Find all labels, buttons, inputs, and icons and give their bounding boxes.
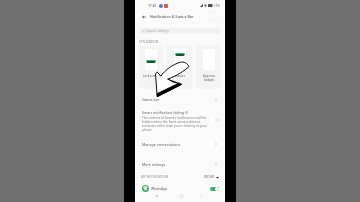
staticText: App icon badges bbox=[203, 74, 215, 82]
staticText: APP NOTIFICATIONS bbox=[141, 175, 169, 179]
button[interactable]: Smart notification hiding bbox=[135, 108, 225, 138]
button[interactable]: Manage conversations bbox=[135, 138, 225, 150]
staticText: Notification & Status Bar bbox=[150, 14, 194, 19]
staticText: 19% bbox=[214, 4, 220, 8]
button[interactable]: Banner bbox=[167, 45, 192, 89]
staticText: Lock screen bbox=[143, 74, 159, 78]
button[interactable]: Recent apps bbox=[153, 192, 161, 200]
button[interactable]: WhatsApp bbox=[135, 184, 225, 193]
staticText: RECENT bbox=[204, 175, 215, 179]
button[interactable]: RECENT bbox=[204, 175, 219, 179]
button[interactable]: App icon badges bbox=[196, 45, 221, 89]
button[interactable]: Search settings bbox=[139, 28, 221, 34]
staticText: More settings bbox=[142, 162, 166, 167]
staticText: The content of banner notifications will… bbox=[142, 116, 208, 132]
staticText: Search settings bbox=[146, 29, 169, 33]
button[interactable]: Status bar bbox=[135, 94, 225, 105]
button[interactable]: Home bbox=[177, 192, 185, 200]
staticText: Smart notification hiding bbox=[142, 110, 184, 115]
staticText: WhatsApp bbox=[151, 186, 168, 191]
staticText: Manage conversations bbox=[142, 142, 181, 147]
button[interactable]: More settings bbox=[135, 158, 225, 170]
button[interactable]: Lock screen bbox=[139, 45, 163, 89]
button[interactable]: Back bbox=[139, 12, 148, 21]
staticText: Banner bbox=[175, 74, 185, 78]
staticText: 17:25 bbox=[148, 4, 157, 8]
staticText: Status bar bbox=[142, 97, 160, 102]
staticText: STYLIZATION bbox=[139, 40, 159, 44]
